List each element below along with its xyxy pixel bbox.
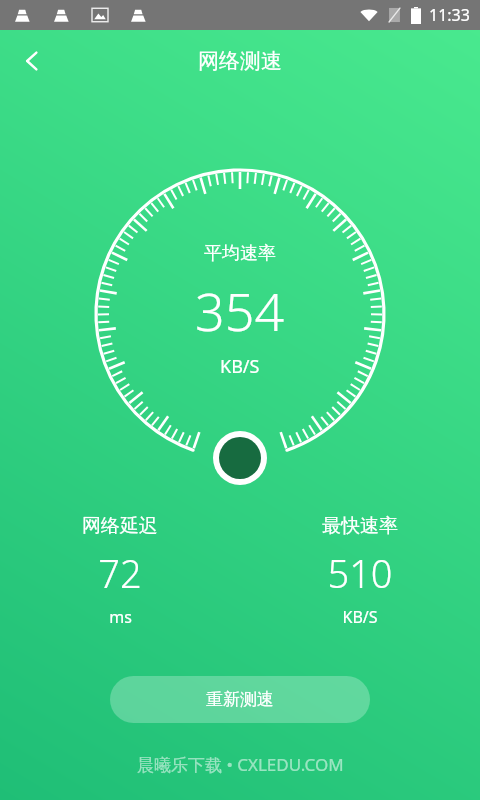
staticText: KB/S [220,354,260,379]
staticText: 重新测速 [206,689,274,710]
staticText: 网络延迟 [82,514,158,538]
staticText: 网络测速 [198,48,282,74]
staticText: 354 [195,275,285,346]
staticText: 11:33 [429,4,470,26]
button[interactable]: 重新测速 [110,676,370,723]
staticText: ms [109,606,132,628]
staticText: 最快速率 [322,514,398,538]
staticText: 72 [98,547,142,599]
button[interactable]: Back [6,35,58,87]
staticText: KB/S [342,606,378,628]
staticText: 晨曦乐下载 • CXLEDU.COM [137,753,344,776]
staticText: 平均速率 [204,242,276,265]
staticText: 510 [327,547,393,599]
